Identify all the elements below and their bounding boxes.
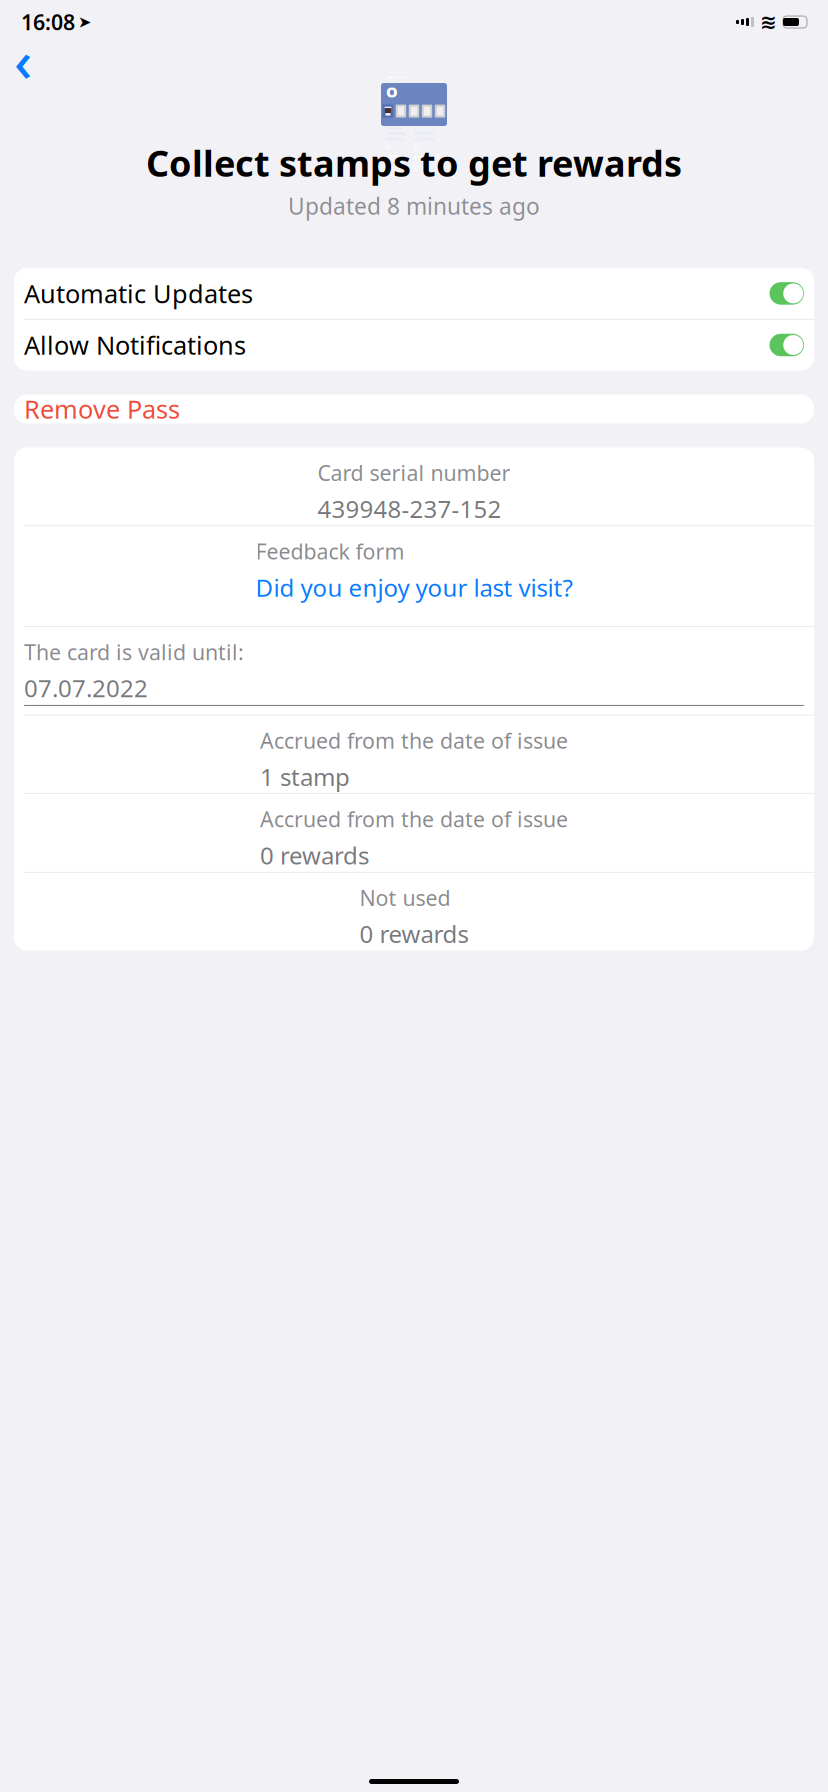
- staticText: 439948-237-152: [317, 493, 501, 525]
- staticText: Updated 8 minutes ago: [288, 191, 540, 221]
- staticText: 07.07.2022: [24, 672, 148, 704]
- staticText: The card is valid until:: [24, 638, 244, 666]
- staticText: Allow Notifications: [24, 328, 246, 362]
- button[interactable]: Automatic Updates: [14, 268, 814, 319]
- staticText: Not used: [359, 883, 450, 912]
- staticText: Collect stamps to get rewards: [146, 139, 682, 187]
- staticText: ‹: [14, 23, 32, 97]
- staticText: STAMPS UNTIL THE REWARD: [386, 126, 405, 141]
- staticText: 0 rewards: [414, 141, 442, 173]
- staticText: 0 rewards: [359, 918, 468, 950]
- staticText: NERO: [386, 43, 409, 102]
- staticText: 4 stamps: [386, 141, 402, 173]
- staticText: Accrued from the date of issue: [260, 805, 568, 833]
- staticText: Feedback form: [255, 537, 404, 565]
- staticText: Card serial number: [317, 458, 510, 487]
- button[interactable]: Remove Pass: [14, 394, 814, 423]
- staticText: ➤: [78, 13, 91, 31]
- staticText: Automatic Updates: [24, 277, 253, 310]
- button[interactable]: Back: [6, 43, 40, 77]
- staticText: Remove Pass: [24, 392, 180, 426]
- staticText: 1 stamp: [260, 761, 350, 792]
- button[interactable]: Allow Notifications: [14, 319, 814, 370]
- staticText: REWARDS COLLECTED: [414, 131, 435, 141]
- staticText: Accrued from the date of issue: [260, 726, 568, 755]
- staticText: 16:08: [21, 8, 75, 36]
- staticText: Did you enjoy your last visit?: [255, 571, 572, 603]
- staticText: 0 rewards: [260, 839, 369, 871]
- staticText: ≋: [760, 11, 777, 33]
